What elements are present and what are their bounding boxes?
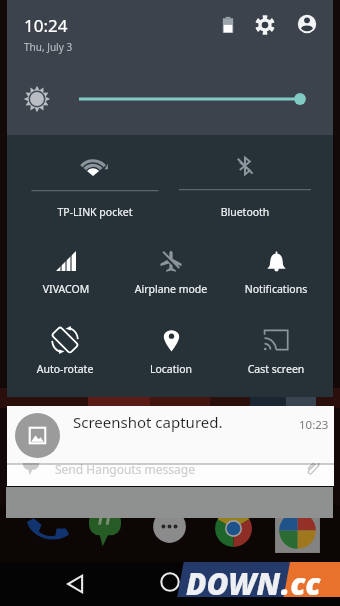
staticText: TP-LINK pocket	[43, 205, 147, 219]
button[interactable]: Brightness level	[79, 87, 306, 111]
staticText: .cc	[281, 563, 321, 604]
staticText: Cast screen	[224, 362, 328, 376]
button[interactable]: VIVACOM	[14, 239, 118, 299]
staticText: DOWN	[186, 563, 281, 604]
button[interactable]: Settings	[251, 11, 279, 39]
button[interactable]: User profile	[293, 10, 321, 38]
staticText: 10:24	[24, 14, 68, 37]
button[interactable]: Back	[54, 562, 98, 606]
button[interactable]: Brightness	[22, 84, 52, 114]
button[interactable]: Airplane mode	[119, 239, 223, 299]
button[interactable]: TP-LINK pocket	[43, 145, 147, 222]
button[interactable]: Screenshot captured.	[7, 406, 334, 463]
button[interactable]: App	[150, 507, 189, 546]
button[interactable]: Location	[119, 318, 223, 379]
button[interactable]: Notifications	[224, 239, 328, 299]
staticText: 10:23	[299, 417, 329, 433]
staticText: Airplane mode	[119, 282, 223, 296]
button[interactable]: Cast screen	[224, 318, 328, 379]
button[interactable]: Battery	[214, 11, 242, 39]
button[interactable]: Home	[148, 560, 192, 604]
button[interactable]: App	[85, 508, 125, 548]
staticText: Thu, July 3	[24, 40, 73, 54]
staticText: Auto-rotate	[13, 362, 117, 376]
staticText: Send Hangouts message	[55, 461, 195, 477]
button[interactable]: App	[211, 506, 256, 551]
button[interactable]: App	[272, 505, 323, 556]
button[interactable]: Send Hangouts message	[7, 441, 334, 486]
staticText: Notifications	[224, 282, 328, 296]
staticText: Bluetooth	[193, 205, 297, 219]
staticText: Location	[119, 362, 223, 376]
button[interactable]: Auto-rotate	[13, 318, 117, 379]
staticText: Screenshot captured.	[73, 412, 223, 432]
button[interactable]: Bluetooth	[193, 144, 297, 222]
button[interactable]: App	[24, 508, 67, 551]
staticText: VIVACOM	[14, 282, 118, 296]
